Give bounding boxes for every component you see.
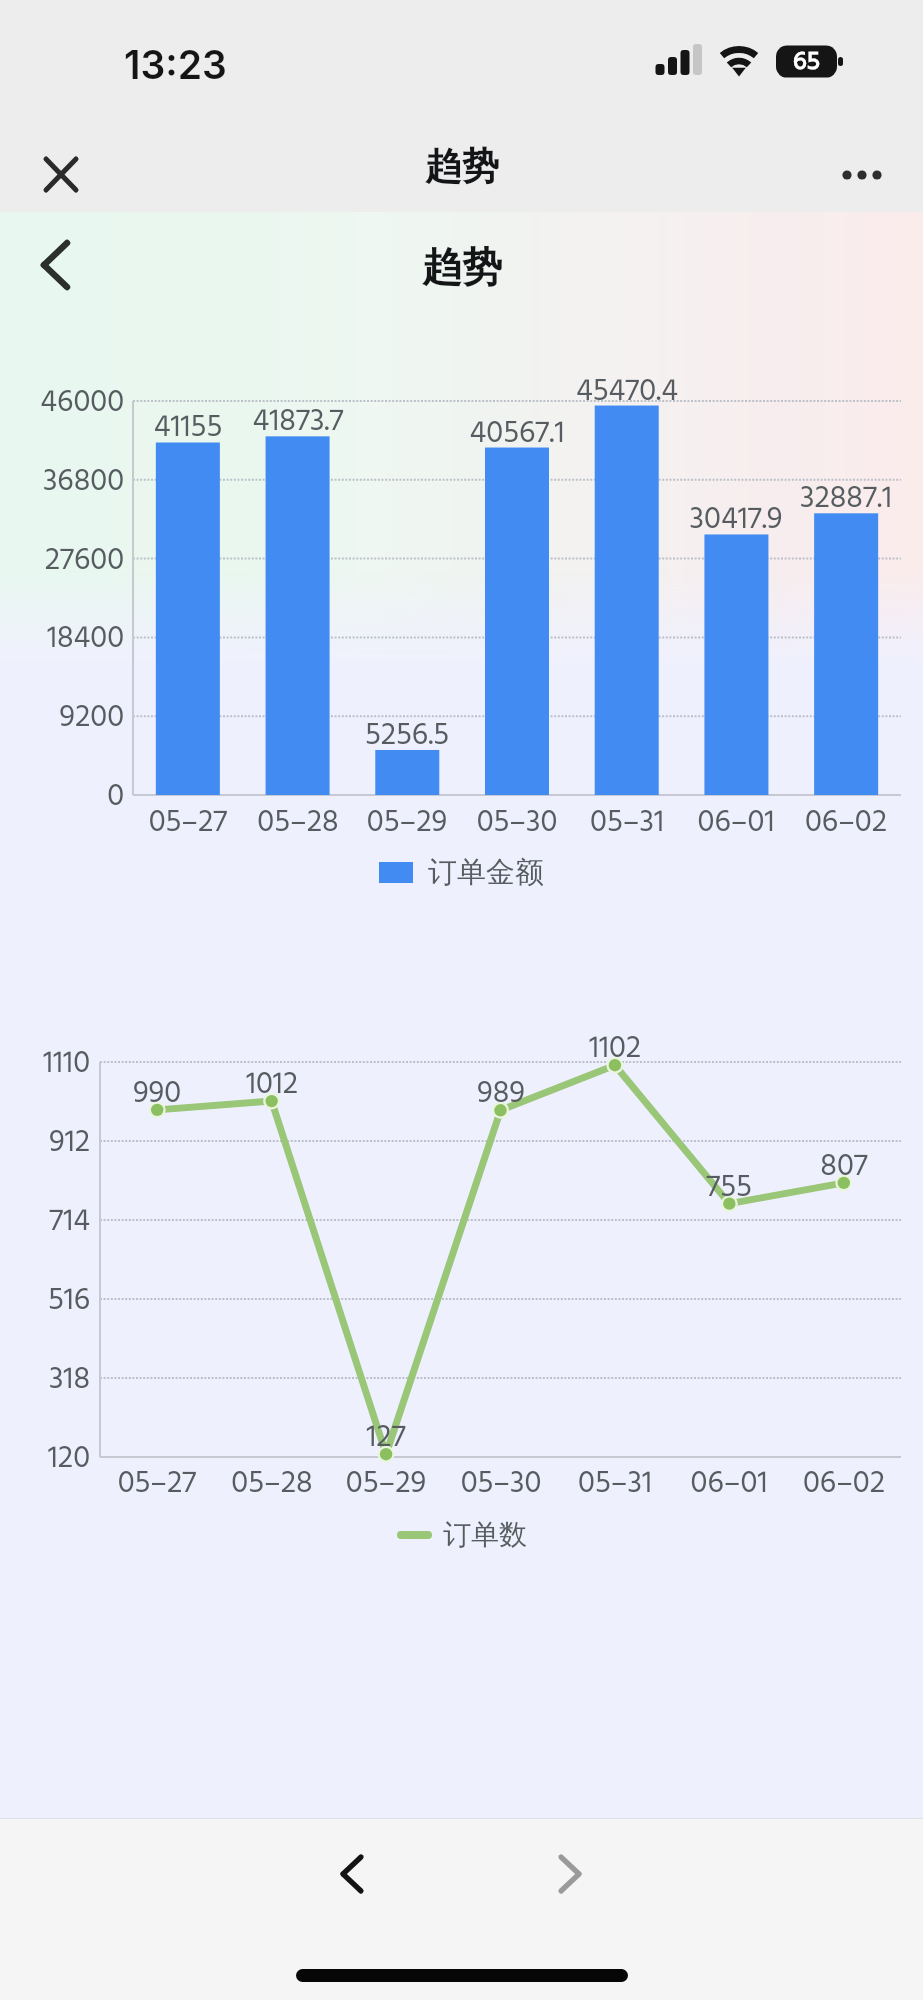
staticText: 18400 xyxy=(0,614,124,664)
staticText: 46000 xyxy=(0,378,124,428)
staticText: 1012 xyxy=(182,1060,362,1110)
staticText: 06–01 xyxy=(639,1459,819,1509)
staticText: 趋势 xyxy=(425,143,499,190)
button[interactable]: Back xyxy=(24,228,96,300)
staticText: 127 xyxy=(296,1413,476,1463)
staticText: 714 xyxy=(0,1197,90,1247)
staticText: 05–31 xyxy=(537,798,717,848)
staticText: 06–02 xyxy=(756,798,923,848)
staticText: 516 xyxy=(0,1276,90,1326)
staticText: 13:23 xyxy=(124,41,227,88)
button[interactable]: Forward xyxy=(528,1832,612,1916)
staticText: 05–27 xyxy=(67,1459,247,1509)
staticText: 32887.1 xyxy=(756,474,923,524)
button[interactable]: More options xyxy=(826,139,898,211)
staticText: 05–29 xyxy=(317,798,497,848)
button[interactable]: 订单数 xyxy=(397,1517,527,1552)
staticText: 05–31 xyxy=(525,1459,705,1509)
staticText: 990 xyxy=(67,1069,247,1119)
staticText: 807 xyxy=(754,1142,923,1192)
button[interactable]: Close xyxy=(30,143,92,205)
staticText: 30417.9 xyxy=(646,495,826,545)
staticText: 05–28 xyxy=(182,1459,362,1509)
staticText: 05–29 xyxy=(296,1459,476,1509)
staticText: 05–30 xyxy=(411,1459,591,1509)
staticText: 755 xyxy=(639,1163,819,1213)
staticText: 趋势 xyxy=(422,242,502,292)
staticText: 06–02 xyxy=(754,1459,923,1509)
staticText: 5256.5 xyxy=(317,711,497,761)
staticText: 1110 xyxy=(0,1039,90,1089)
staticText: 06–01 xyxy=(646,798,826,848)
staticText: 318 xyxy=(0,1355,90,1405)
staticText: 40567.1 xyxy=(427,409,607,459)
staticText: 订单数 xyxy=(443,1517,527,1552)
staticText: 989 xyxy=(411,1069,591,1119)
staticText: 05–28 xyxy=(208,798,388,848)
staticText: 65 xyxy=(793,42,820,74)
staticText: 9200 xyxy=(0,693,124,743)
staticText: 05–30 xyxy=(427,798,607,848)
staticText: 41873.7 xyxy=(208,397,388,447)
button[interactable]: Back xyxy=(310,1832,394,1916)
staticText: 1102 xyxy=(525,1024,705,1074)
staticText: 0 xyxy=(0,772,124,822)
staticText: 45470.4 xyxy=(537,367,717,417)
staticText: 41155 xyxy=(98,403,278,453)
staticText: 912 xyxy=(0,1118,90,1168)
button[interactable]: 订单金额 xyxy=(379,854,544,891)
staticText: 36800 xyxy=(0,457,124,507)
staticText: 05–27 xyxy=(98,798,278,848)
staticText: 120 xyxy=(0,1434,90,1484)
staticText: 订单金额 xyxy=(428,854,544,891)
staticText: 27600 xyxy=(0,536,124,586)
